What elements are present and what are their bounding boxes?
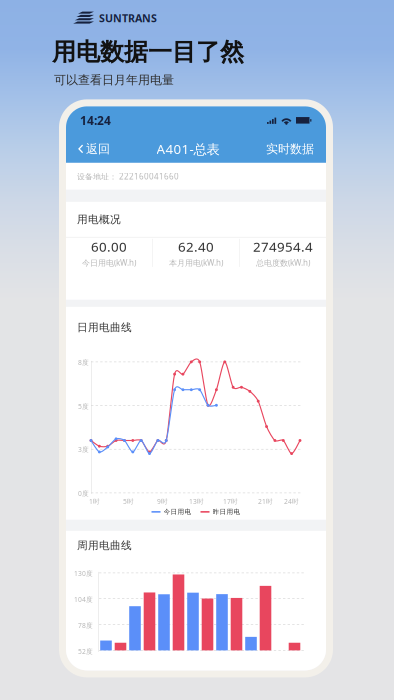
staticText: 可以查看日月年用电量 <box>54 73 174 87</box>
staticText: 52度 <box>78 647 93 656</box>
staticText: 130度 <box>74 569 93 578</box>
staticText: 62.40 <box>178 238 214 255</box>
staticText: 本月用电(kW.h) <box>169 257 223 268</box>
staticText: 周用电曲线 <box>77 539 132 552</box>
staticText: 104度 <box>74 595 93 604</box>
staticText: 5度 <box>78 402 89 411</box>
staticText: 5时 <box>123 497 134 506</box>
button[interactable]: 返回 <box>69 135 119 163</box>
staticText: 总电度数(kW.h) <box>256 257 310 268</box>
staticText: 返回 <box>86 141 110 156</box>
staticText: 设备地址： 222160041660 <box>77 171 179 182</box>
staticText: 9时 <box>157 497 168 506</box>
staticText: 今日用电(kW.h) <box>82 257 136 268</box>
staticText: 今日用电 <box>163 508 191 516</box>
staticText: 78度 <box>78 621 93 630</box>
staticText: 274954.4 <box>253 238 313 255</box>
staticText: 24时 <box>284 497 299 506</box>
staticText: 日用电曲线 <box>77 321 132 334</box>
staticText: 0度 <box>78 489 89 498</box>
staticText: 1时 <box>89 497 100 506</box>
staticText: A401-总表 <box>156 140 219 158</box>
staticText: 实时数据 <box>266 141 314 156</box>
staticText: 用电数据一目了然 <box>52 37 244 67</box>
staticText: 60.00 <box>91 238 127 255</box>
staticText: 13时 <box>189 497 204 506</box>
staticText: 3度 <box>78 445 89 454</box>
staticText: 21时 <box>258 497 273 506</box>
button[interactable]: 实时数据 <box>257 135 323 163</box>
staticText: 用电概况 <box>77 213 121 226</box>
staticText: SUNTRANS <box>99 11 157 25</box>
staticText: 14:24 <box>80 112 111 128</box>
staticText: 昨日用电 <box>212 508 240 516</box>
staticText: 17时 <box>223 497 238 506</box>
staticText: 8度 <box>78 358 89 367</box>
